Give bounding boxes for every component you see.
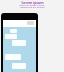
staticText: adipiscing elit sed eu [20,5,45,8]
button[interactable] [12,63,26,69]
button[interactable] [27,21,34,25]
button[interactable] [12,40,26,46]
button[interactable] [10,29,17,33]
staticText: Lorem ipsum [21,0,44,5]
staticText: dolor sit amet consec [19,3,45,6]
button[interactable] [5,34,17,39]
button[interactable] [5,54,21,60]
